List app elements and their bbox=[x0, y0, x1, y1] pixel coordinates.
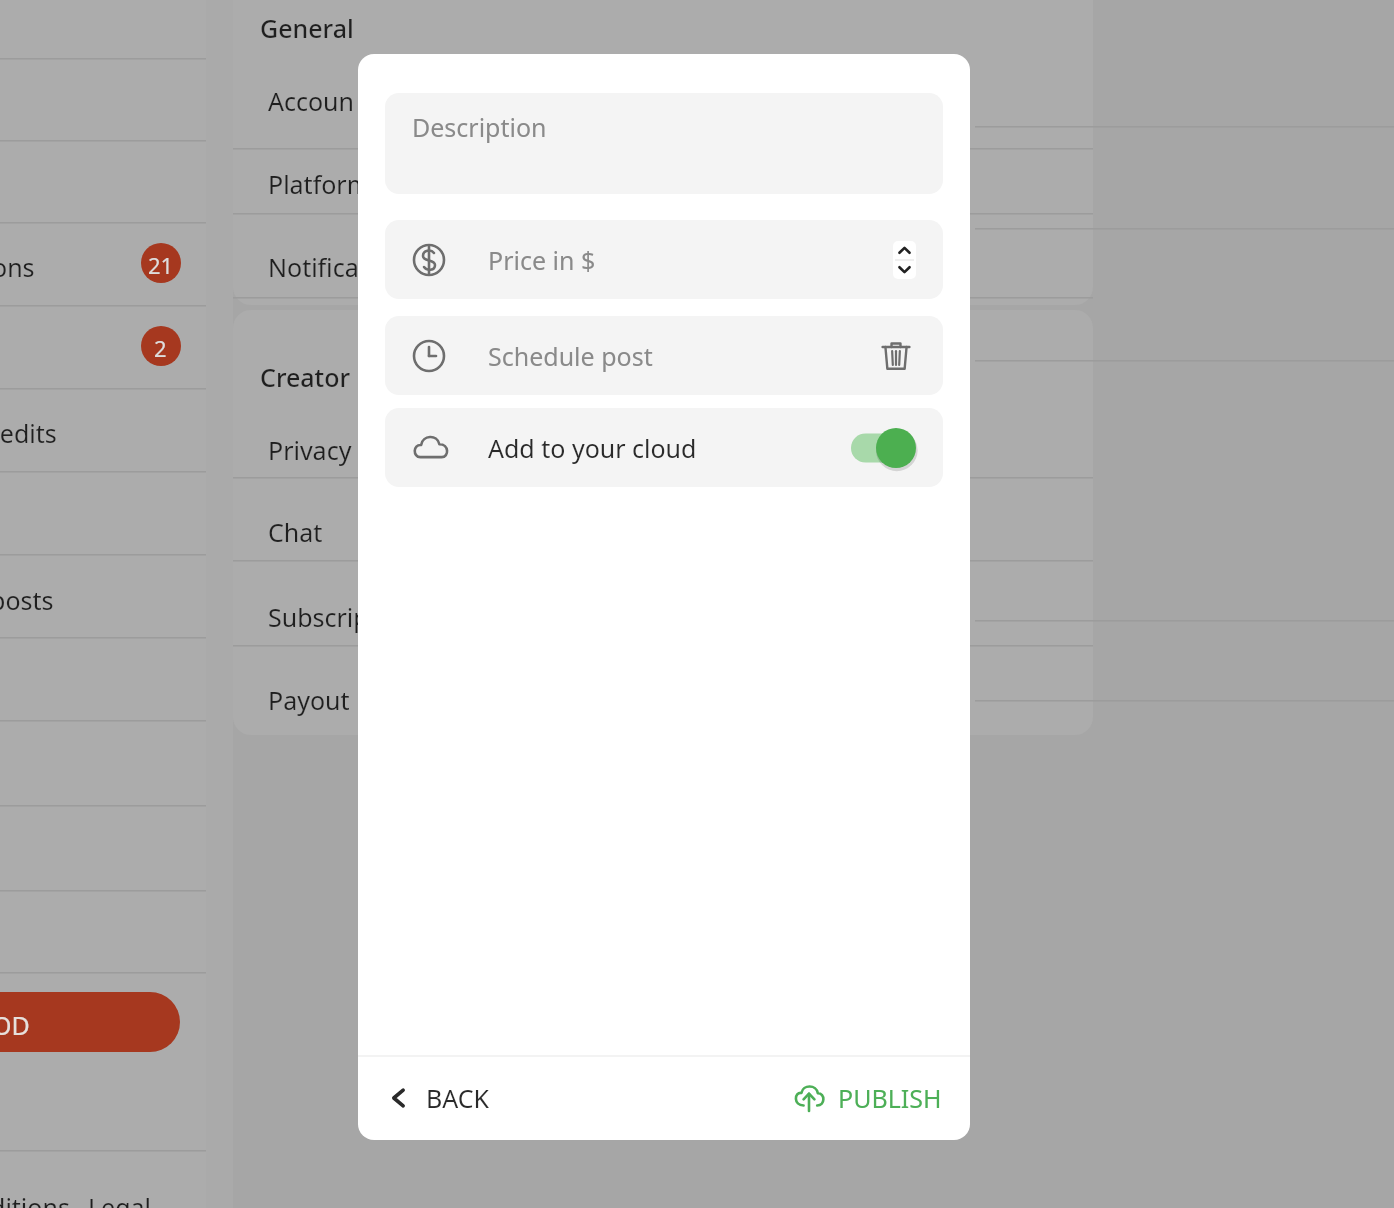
staticText: Description bbox=[412, 110, 547, 144]
button[interactable]: Price in $ bbox=[385, 220, 943, 299]
staticText: BACK bbox=[426, 1081, 490, 1115]
staticText: 21 bbox=[148, 250, 174, 280]
button[interactable]: BACK bbox=[380, 1073, 496, 1123]
staticText: Price in $ bbox=[488, 243, 596, 277]
staticText: Creator bbox=[260, 360, 351, 394]
staticText: PUBLISH bbox=[838, 1081, 942, 1115]
staticText: Schedule post bbox=[488, 339, 653, 373]
staticText: OD bbox=[0, 1008, 30, 1042]
staticText: ditions bbox=[0, 1190, 70, 1208]
staticText: Legal bbox=[88, 1190, 152, 1208]
staticText: 2 bbox=[154, 333, 167, 363]
button[interactable]: Clear schedule bbox=[876, 336, 916, 376]
staticText: Add to your cloud bbox=[488, 431, 697, 465]
staticText: posts bbox=[0, 583, 54, 617]
staticText: Platform bbox=[268, 167, 371, 201]
button[interactable]: Schedule post bbox=[385, 316, 943, 395]
staticText: Privacy bbox=[268, 433, 352, 467]
staticText: Notifica bbox=[268, 250, 359, 284]
staticText: ons bbox=[0, 250, 35, 284]
button[interactable]: Increment or decrement price bbox=[893, 241, 916, 279]
staticText: Payout bbox=[268, 683, 350, 717]
staticText: redits bbox=[0, 416, 57, 450]
button[interactable]: Add to your cloud toggle bbox=[851, 428, 916, 468]
staticText: Accoun bbox=[268, 84, 355, 118]
staticText: Subscrip bbox=[268, 600, 369, 634]
button[interactable]: Description bbox=[385, 93, 943, 194]
button[interactable]: PUBLISH bbox=[786, 1073, 948, 1123]
staticText: General bbox=[260, 11, 354, 45]
button[interactable]: Add to your cloud bbox=[385, 408, 943, 487]
staticText: Chat bbox=[268, 515, 323, 549]
